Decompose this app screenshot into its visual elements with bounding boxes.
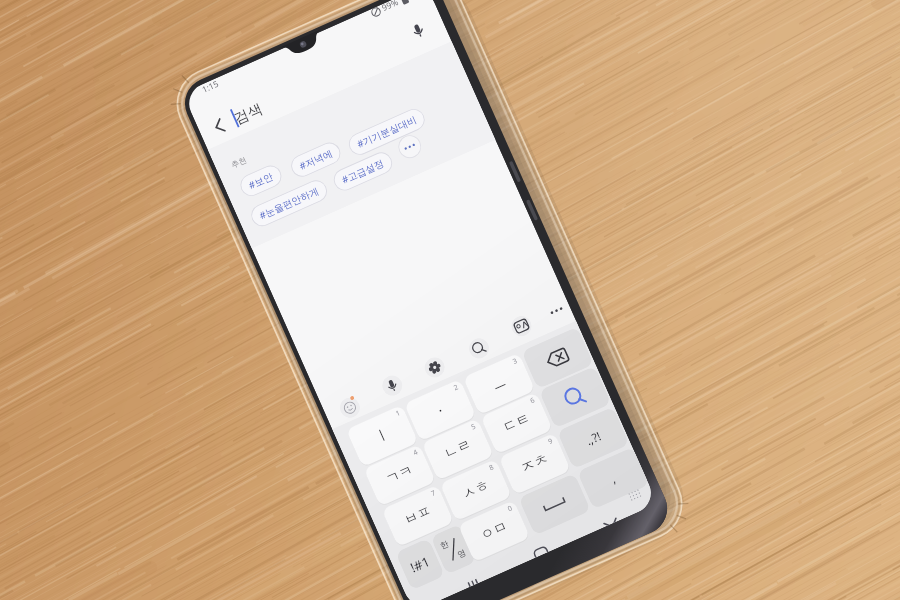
button[interactable] — [0, 0, 900, 600]
